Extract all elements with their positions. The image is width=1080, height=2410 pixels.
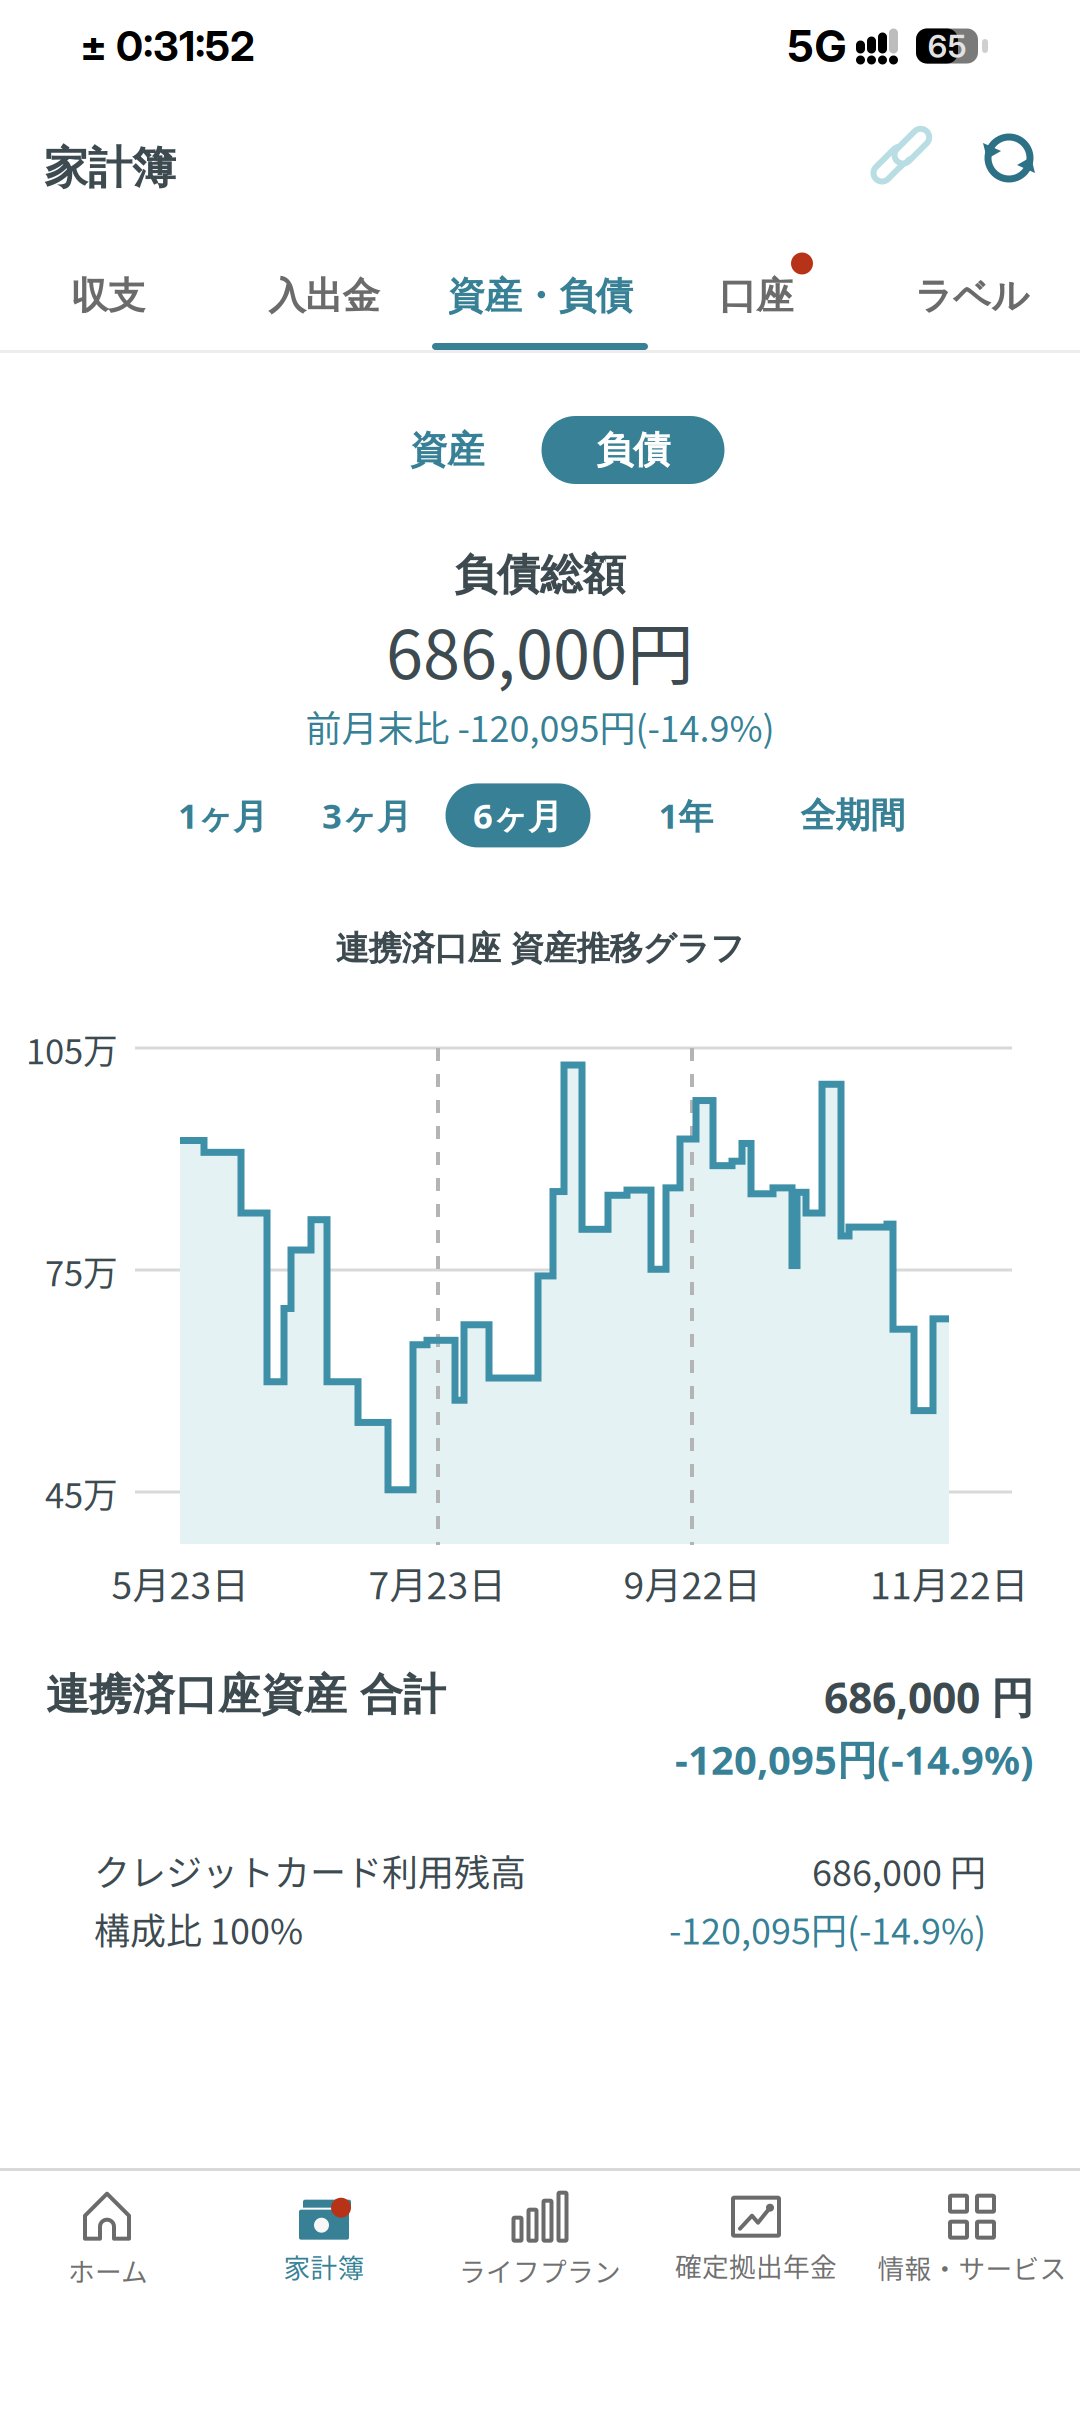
staticText: 1ヶ月 <box>178 792 268 839</box>
staticText: 情報・サービス <box>877 2248 1066 2286</box>
button[interactable]: 入出金 <box>216 216 432 350</box>
staticText: 9月22日 <box>623 1556 760 1610</box>
staticText: 資産・負債 <box>447 272 632 319</box>
button[interactable]: 3ヶ月 <box>307 783 427 847</box>
staticText: 負債 <box>596 426 670 473</box>
staticText: 1年 <box>658 792 713 839</box>
staticText: 収支 <box>71 272 145 319</box>
staticText: 3ヶ月 <box>322 792 412 839</box>
button[interactable]: 確定拠出年金 <box>648 2177 864 2303</box>
button[interactable]: 1年 <box>636 783 736 847</box>
staticText: 75万 <box>45 1246 118 1296</box>
staticText: ± 0:31:52 <box>80 21 255 71</box>
staticText: 負債総額 <box>454 548 626 602</box>
staticText: 5G <box>786 19 847 73</box>
button[interactable]: ホーム <box>0 2177 216 2303</box>
staticText: 6ヶ月 <box>473 792 563 839</box>
button[interactable]: 負債 <box>541 416 724 484</box>
staticText: -120,095円(-14.9%) <box>675 1732 1034 1787</box>
staticText: 全期間 <box>800 794 905 837</box>
staticText: 105万 <box>26 1024 118 1074</box>
button[interactable]: 口座連携 <box>876 132 934 184</box>
staticText: 連携済口座資産 合計 <box>46 1668 446 1722</box>
staticText: 家計簿 <box>44 140 176 196</box>
staticText: -120,095円(-14.9%) <box>669 1903 986 1955</box>
staticText: 口座 <box>719 272 793 319</box>
button[interactable]: 口座 <box>648 216 864 350</box>
button[interactable]: 資産 <box>355 416 538 484</box>
button[interactable]: ライフプラン <box>432 2177 648 2303</box>
staticText: 入出金 <box>268 272 379 319</box>
staticText: 686,000円 <box>386 602 694 698</box>
button[interactable]: 情報・サービス <box>864 2177 1080 2303</box>
staticText: 45万 <box>45 1468 118 1518</box>
button[interactable]: 全期間 <box>788 783 918 847</box>
staticText: 65 <box>927 27 966 65</box>
button[interactable]: 6ヶ月 <box>445 783 590 847</box>
staticText: 構成比 100% <box>94 1903 303 1955</box>
staticText: ホーム <box>68 2251 148 2289</box>
staticText: 家計簿 <box>283 2247 364 2285</box>
button[interactable]: 1ヶ月 <box>163 783 283 847</box>
button[interactable]: 収支 <box>0 216 216 350</box>
staticText: 資産 <box>410 426 484 473</box>
button[interactable]: 資産・負債 <box>432 216 648 350</box>
staticText: 5月23日 <box>111 1556 248 1610</box>
staticText: 前月末比 -120,095円(-14.9%) <box>305 700 774 752</box>
button[interactable]: 家計簿 <box>216 2177 432 2303</box>
staticText: 7月23日 <box>368 1556 505 1610</box>
staticText: 686,000 円 <box>824 1668 1034 1726</box>
staticText: クレジットカード利用残高 <box>94 1845 526 1897</box>
staticText: 11月22日 <box>870 1556 1028 1610</box>
staticText: ライフプラン <box>459 2251 621 2289</box>
button[interactable]: ラベル <box>864 216 1080 350</box>
button[interactable]: 更新 <box>982 131 1038 185</box>
staticText: ラベル <box>915 272 1029 319</box>
staticText: 連携済口座 資産推移グラフ <box>335 927 744 969</box>
staticText: 確定拠出年金 <box>675 2246 837 2284</box>
staticText: 686,000 円 <box>812 1845 986 1897</box>
